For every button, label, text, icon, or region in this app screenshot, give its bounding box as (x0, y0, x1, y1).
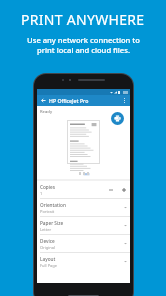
button[interactable]: Increase copies (119, 185, 128, 194)
staticText: Layout (40, 256, 56, 262)
staticText: Full Page (40, 263, 58, 268)
staticText: Copies (40, 184, 55, 190)
staticText: Use any network connection to print loca… (27, 35, 140, 55)
staticText: 1 (40, 191, 43, 196)
button[interactable]: Print (111, 112, 124, 125)
button[interactable]: Orientation (37, 199, 130, 216)
button[interactable]: Back (39, 96, 48, 105)
staticText: Letter (40, 227, 52, 232)
staticText: PRINT ANYWHERE (21, 10, 145, 29)
staticText: Portrait (40, 209, 55, 214)
staticText: Original (40, 245, 56, 250)
button[interactable]: Paper Size (37, 217, 130, 234)
button[interactable]: Decrease copies (106, 185, 115, 194)
button[interactable]: Device (37, 235, 130, 252)
staticText: HP OfficeJet Pro (49, 97, 89, 104)
staticText: Ready (40, 109, 53, 115)
button[interactable]: Layout (37, 253, 130, 270)
button[interactable]: Copies (37, 181, 130, 198)
button[interactable]: More options (120, 96, 129, 105)
staticText: Orientation (40, 202, 66, 208)
staticText: Paper Size (40, 220, 64, 226)
staticText: Device (40, 238, 55, 244)
